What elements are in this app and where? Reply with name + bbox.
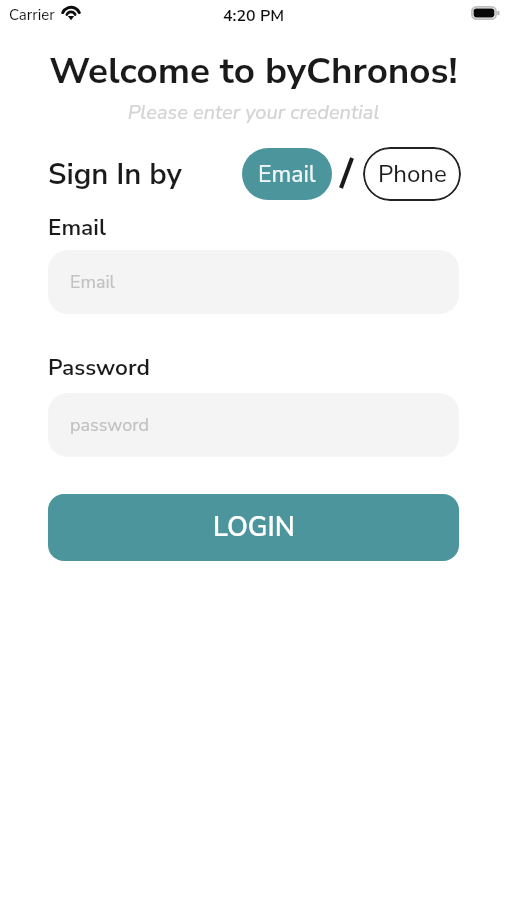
other: Battery full xyxy=(471,6,500,20)
staticText: Password xyxy=(48,352,150,383)
staticText: Carrier xyxy=(9,5,55,25)
staticText: LOGIN xyxy=(213,509,295,546)
button[interactable]: Email xyxy=(242,148,332,200)
staticText: Welcome to byChronos! xyxy=(0,46,507,96)
staticText: Email xyxy=(48,212,107,243)
button[interactable]: Email xyxy=(48,250,459,314)
staticText: Phone xyxy=(378,158,447,191)
staticText: Please enter your credential xyxy=(0,99,507,126)
staticText: password xyxy=(70,413,150,438)
button[interactable]: Phone xyxy=(363,147,461,201)
staticText: 4:20 PM xyxy=(223,5,285,27)
button[interactable]: LOGIN xyxy=(48,494,459,561)
button[interactable]: password xyxy=(48,393,459,457)
staticText: Email xyxy=(70,270,115,295)
staticText: Sign In by xyxy=(48,154,182,194)
other: Wi-Fi signal xyxy=(61,5,81,21)
staticText: Email xyxy=(258,159,316,190)
